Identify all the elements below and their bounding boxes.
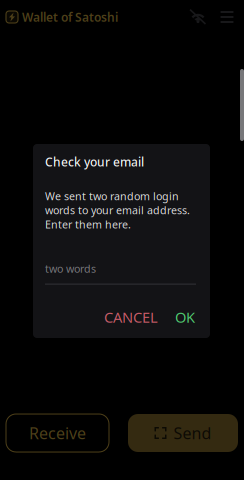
staticText: Send	[173, 422, 211, 444]
staticText: OK	[175, 307, 195, 327]
staticText: We sent two random login	[45, 189, 179, 203]
staticText: Wallet of Satoshi	[22, 9, 118, 25]
staticText: Receive	[29, 422, 86, 444]
staticText: Enter them here.	[45, 217, 131, 231]
staticText: words to your email address.	[45, 203, 190, 217]
staticText: Check your email	[45, 154, 144, 170]
button[interactable]: Menu	[213, 0, 241, 34]
button[interactable]: Wallet of Satoshi	[0, 0, 124, 34]
staticText: two words	[45, 261, 96, 276]
button[interactable]: CANCEL	[96, 306, 166, 328]
staticText: CANCEL	[104, 307, 158, 327]
button[interactable]: Connection status	[183, 0, 213, 34]
button[interactable]: Send	[128, 414, 238, 452]
button[interactable]: OK	[166, 306, 196, 328]
button[interactable]: Receive	[6, 414, 109, 452]
